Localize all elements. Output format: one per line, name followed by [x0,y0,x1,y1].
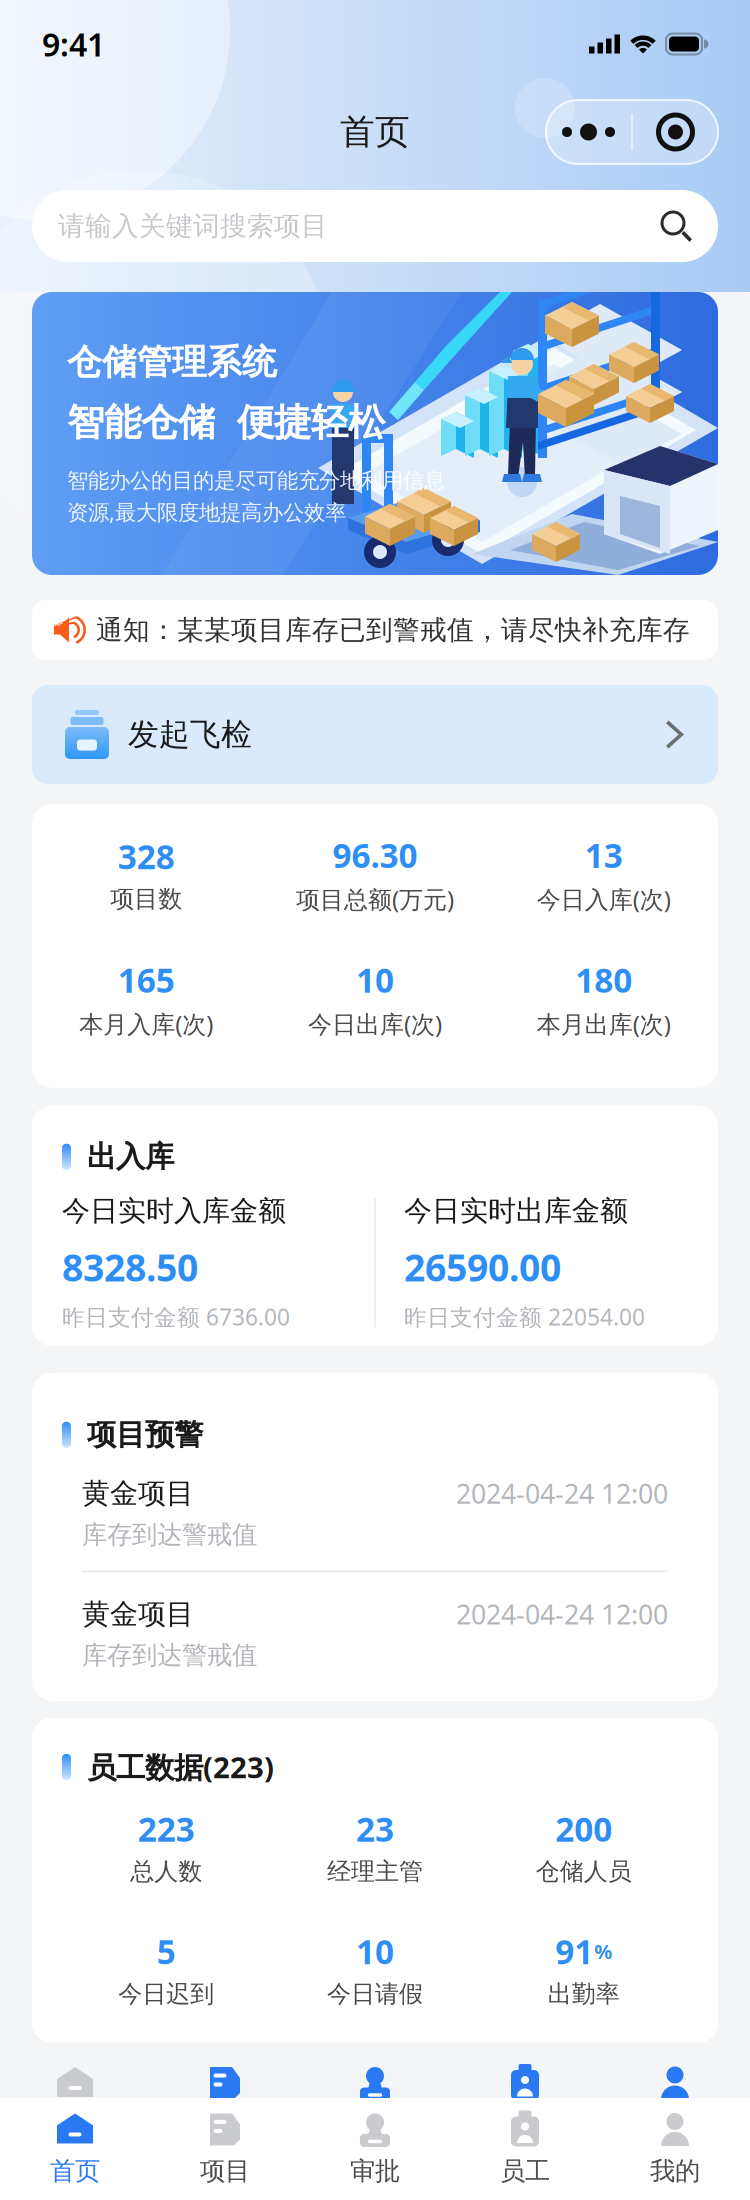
staticText: 黄金项目 [82,1597,194,1631]
staticText: 13 [585,833,623,877]
staticText: 项目总额(万元) [296,883,454,915]
button[interactable]: 请输入关键词搜索项目 [32,190,718,262]
button[interactable]: 审批 [300,2097,450,2200]
staticText: 今日请假 [327,1979,423,2009]
button[interactable]: 项目 [150,2097,300,2200]
staticText: 今日实时出库金额 [404,1194,628,1228]
staticText: 资源,最大限度地提高办公效率 [67,498,346,526]
staticText: 23 [356,1807,394,1851]
staticText: 今日迟到 [118,1979,214,2009]
staticText: 项目预警 [87,1417,203,1453]
staticText: 8328.50 [62,1242,198,1292]
staticText: 我的 [650,2155,700,2186]
staticText: 9:41 [42,23,105,65]
staticText: 请输入关键词搜索项目 [58,210,328,242]
staticText: 库存到达警戒值 [82,1640,257,1671]
staticText: 91 [555,1929,593,1973]
staticText: 5 [157,1929,176,1973]
staticText: 200 [555,1807,612,1851]
staticText: 智能办公的目的是尽可能充分地利用信息 [67,467,445,494]
staticText: 发起飞检 [128,716,252,753]
button[interactable]: 发起飞检 [32,685,718,784]
staticText: 2024-04-24 12:00 [456,1476,668,1511]
staticText: 仓储人员 [536,1857,632,1886]
staticText: 223 [138,1807,195,1851]
staticText: 仓储管理系统 [67,341,277,384]
staticText: 通知：某某项目库存已到警戒值，请尽快补充库存 [96,614,690,646]
staticText: 10 [356,958,394,1002]
staticText: 今日入库(次) [537,883,671,915]
staticText: 员工数据(223) [87,1747,274,1786]
button[interactable]: 员工 [450,2097,600,2200]
staticText: 首页 [50,2155,100,2186]
staticText: % [594,1938,612,1965]
staticText: 昨日支付金额 6736.00 [62,1302,290,1332]
staticText: 审批 [350,2155,400,2186]
staticText: 智能仓储 便捷轻松 [67,400,385,445]
staticText: 总人数 [130,1857,202,1886]
staticText: 10 [356,1929,394,1973]
staticText: 180 [575,958,632,1002]
staticText: 库存到达警戒值 [82,1519,257,1550]
staticText: 出入库 [87,1139,174,1175]
staticText: 96.30 [332,833,417,877]
staticText: 员工 [500,2155,550,2186]
staticText: 今日实时入库金额 [62,1194,286,1228]
button[interactable]: 我的 [600,2097,750,2200]
staticText: 项目 [200,2155,250,2186]
staticText: 本月入库(次) [79,1008,213,1040]
staticText: 经理主管 [327,1857,423,1886]
staticText: 165 [118,958,175,1002]
staticText: 出勤率 [548,1979,620,2009]
staticText: 首页 [340,111,410,153]
staticText: 328 [118,834,175,878]
staticText: 昨日支付金额 22054.00 [404,1302,645,1332]
staticText: 本月出库(次) [537,1008,671,1040]
button[interactable]: 黄金项目 [62,1572,688,1691]
button[interactable]: 首页 [0,2097,150,2200]
staticText: 26590.00 [404,1242,561,1292]
staticText: 今日出库(次) [308,1008,442,1040]
staticText: 2024-04-24 12:00 [456,1596,668,1632]
staticText: 黄金项目 [82,1476,194,1511]
button[interactable]: Menu and close [546,100,718,164]
staticText: 项目数 [110,884,182,914]
button[interactable]: 黄金项目 [62,1452,688,1570]
